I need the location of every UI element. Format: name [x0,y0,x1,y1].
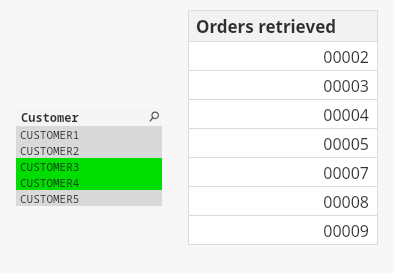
staticText: 00007 [323,162,369,184]
staticText: Customer [21,109,79,125]
button[interactable]: CUSTOMER4 [16,174,162,190]
button[interactable]: 00005 [188,129,378,158]
button[interactable]: Customer [16,108,162,126]
button[interactable]: CUSTOMER5 [16,190,162,206]
button[interactable]: Search [146,109,162,125]
staticText: CUSTOMER4 [20,175,80,190]
button[interactable]: Orders retrieved [188,10,378,42]
staticText: CUSTOMER5 [20,191,80,206]
button[interactable]: 00003 [188,71,378,100]
staticText: 00005 [323,133,369,155]
button[interactable]: 00009 [188,216,378,245]
staticText: Orders retrieved [196,15,337,38]
button[interactable]: 00002 [188,42,378,71]
staticText: 00008 [323,191,369,213]
button[interactable]: CUSTOMER2 [16,142,162,158]
staticText: 00009 [323,220,369,242]
staticText: 00002 [323,46,369,68]
staticText: 00003 [323,75,369,97]
button[interactable]: 00004 [188,100,378,129]
staticText: 00004 [323,104,369,126]
button[interactable]: 00007 [188,158,378,187]
staticText: CUSTOMER3 [20,159,80,174]
button[interactable]: 00008 [188,187,378,216]
button[interactable]: CUSTOMER1 [16,126,162,142]
button[interactable]: CUSTOMER3 [16,158,162,174]
staticText: CUSTOMER1 [20,127,80,142]
staticText: CUSTOMER2 [20,143,80,158]
